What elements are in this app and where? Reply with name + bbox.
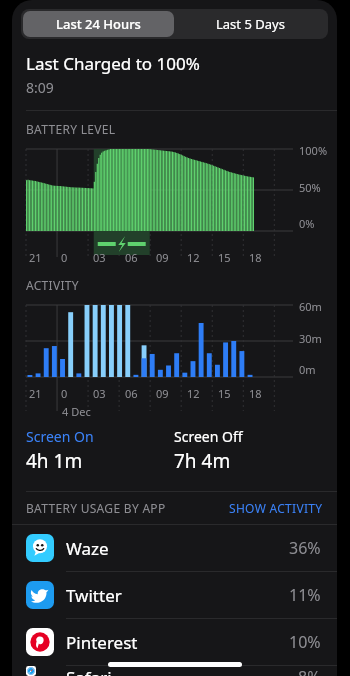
staticText: 21 [29, 386, 42, 401]
staticText: BATTERY LEVEL [26, 121, 116, 137]
staticText: 03 [93, 250, 106, 265]
button[interactable]: Safari [12, 666, 337, 676]
staticText: 50% [299, 180, 321, 195]
staticText: 21 [29, 250, 42, 265]
staticText: Twitter [66, 584, 122, 607]
staticText: 0 [61, 386, 68, 401]
staticText: 60m [299, 299, 322, 314]
staticText: 0m [299, 362, 316, 377]
staticText: Last 5 Days [216, 15, 285, 33]
staticText: 100% [299, 143, 328, 158]
staticText: 8:09 [26, 78, 54, 97]
button[interactable]: Last 24 Hours [23, 11, 174, 37]
staticText: 4h 1m [26, 448, 83, 474]
staticText: ACTIVITY [26, 277, 79, 293]
staticText: 4 Dec [62, 404, 91, 419]
staticText: 0 [61, 250, 68, 265]
button[interactable]: Waze [12, 525, 337, 571]
staticText: 09 [156, 386, 169, 401]
staticText: 12 [187, 386, 200, 401]
staticText: Last Charged to 100% [26, 52, 200, 75]
staticText: Screen Off [174, 427, 243, 446]
staticText: 15 [218, 386, 231, 401]
staticText: Safari [66, 666, 112, 676]
staticText: 36% [289, 537, 321, 559]
staticText: 8% [298, 666, 321, 676]
staticText: 12 [187, 250, 200, 265]
button[interactable]: Twitter [12, 572, 337, 618]
staticText: 30m [299, 331, 322, 346]
staticText: 7h 4m [174, 448, 231, 474]
staticText: 10% [289, 631, 321, 653]
staticText: Pinterest [66, 631, 138, 654]
button[interactable]: Pinterest [12, 619, 337, 665]
staticText: 15 [218, 250, 231, 265]
staticText: SHOW ACTIVITY [229, 500, 323, 516]
staticText: Screen On [26, 427, 94, 446]
staticText: Waze [66, 537, 109, 560]
staticText: 18 [249, 250, 262, 265]
staticText: 09 [156, 250, 169, 265]
button[interactable]: SHOW ACTIVITY [229, 500, 323, 516]
staticText: BATTERY USAGE BY APP [26, 500, 166, 516]
staticText: Last 24 Hours [56, 15, 141, 33]
staticText: 06 [125, 386, 138, 401]
staticText: 03 [93, 386, 106, 401]
button[interactable]: Last 5 Days [174, 11, 326, 37]
staticText: 06 [125, 250, 138, 265]
staticText: 18 [249, 386, 262, 401]
staticText: 11% [289, 584, 321, 606]
staticText: 0% [299, 216, 315, 231]
